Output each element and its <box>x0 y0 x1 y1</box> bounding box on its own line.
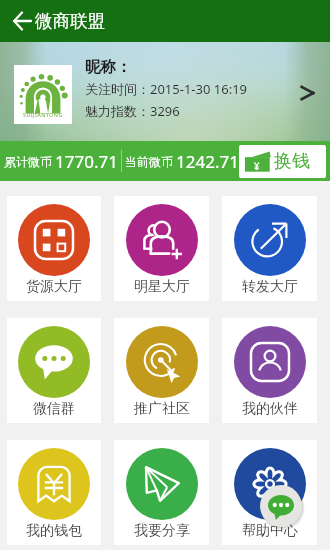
staticText: 微信群 <box>33 400 75 418</box>
button[interactable]: 我要分享 <box>114 440 209 545</box>
button[interactable]: 明星大厅 <box>114 196 209 301</box>
button[interactable]: SUIJIANTONG <box>0 42 330 141</box>
staticText: 推广社区 <box>134 400 190 418</box>
button[interactable]: 我的钱包 <box>7 440 101 545</box>
button[interactable]: Customer service chat <box>257 482 305 530</box>
button[interactable]: 微信群 <box>7 318 101 423</box>
staticText: 转发大厅 <box>242 278 298 296</box>
button[interactable]: 货源大厅 <box>7 196 101 301</box>
button[interactable]: 我的伙伴 <box>222 318 317 423</box>
staticText: 累计微币 <box>4 154 52 169</box>
staticText: 微商联盟 <box>35 10 105 32</box>
staticText: 换钱 <box>274 150 310 173</box>
staticText: 昵称： <box>85 57 132 77</box>
button[interactable]: 帮助中心 <box>222 440 317 545</box>
staticText: 魅力指数：3296 <box>85 102 180 120</box>
staticText: 帮助中心 <box>242 522 298 540</box>
staticText: 我的伙伴 <box>242 400 298 418</box>
staticText: 我要分享 <box>134 522 190 540</box>
staticText: 我的钱包 <box>26 522 82 540</box>
staticText: 1242.71 <box>176 150 239 173</box>
staticText: 货源大厅 <box>26 278 82 296</box>
staticText: 明星大厅 <box>134 278 190 296</box>
staticText: SUIJIANTONG <box>23 111 63 118</box>
staticText: 1770.71 <box>55 150 118 173</box>
button[interactable]: Back <box>0 0 34 42</box>
button[interactable]: 换钱 <box>239 145 326 178</box>
staticText: 当前微币 <box>125 154 173 169</box>
staticText: 关注时间：2015-1-30 16:19 <box>85 80 248 98</box>
button[interactable]: 推广社区 <box>114 318 209 423</box>
button[interactable]: 转发大厅 <box>222 196 317 301</box>
